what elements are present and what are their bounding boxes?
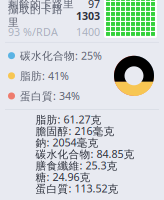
- staticText: 膽固醇: 216毫克: [35, 124, 114, 138]
- staticText: 攝取的卡路里: [8, 3, 63, 29]
- staticText: 碳水化合物: 84.85克: [35, 147, 134, 161]
- staticText: 膳食纖維: 25.3克: [35, 158, 117, 172]
- staticText: 脂肪: 41%: [20, 69, 69, 83]
- staticText: 93 %/RDA: [8, 25, 58, 39]
- staticText: 1303: [76, 9, 100, 23]
- staticText: 1400: [76, 25, 100, 39]
- staticText: 蛋白質: 113.52克: [35, 181, 118, 195]
- staticText: 蛋白質: 34%: [20, 89, 80, 103]
- staticText: 97: [88, 0, 100, 11]
- staticText: 剩餘的卡路里: [8, 0, 74, 10]
- staticText: 碳水化合物: 25%: [20, 49, 102, 63]
- staticText: 糖: 24.96克: [35, 170, 90, 184]
- staticText: 鈉: 2054毫克: [35, 135, 98, 149]
- staticText: 脂肪: 61.27克: [35, 112, 101, 126]
